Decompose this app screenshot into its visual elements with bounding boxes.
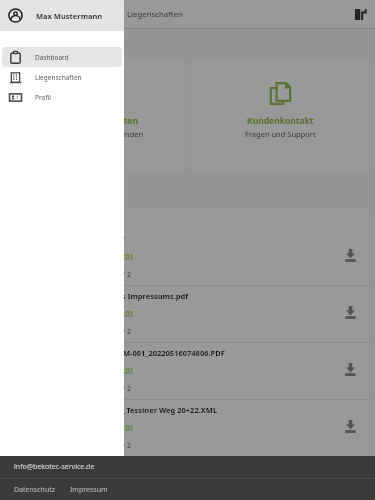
staticText: info@bekotec-service.de <box>14 462 95 472</box>
staticText: Objektstammdaten_Export_A_Tessiner Weg 2… <box>14 405 218 415</box>
staticText: Rechnung_Objektverwalt_RE-M-001_20220516… <box>14 348 225 358</box>
staticText: Dashboard <box>35 53 69 62</box>
button[interactable]: Max Mustermann <box>8 0 124 31</box>
button[interactable]: Rechnung_Objektverwalt_RE-M-001_20220516… <box>6 343 369 399</box>
staticText: Hochgeladen am 16.05.2022 07:48:01 <box>14 252 134 261</box>
button[interactable]: Logout <box>347 0 375 28</box>
button[interactable]: Profil <box>2 87 122 107</box>
button[interactable]: Objektstammdaten_Export_A_Tessiner Weg 2… <box>6 400 369 456</box>
staticText: Ihre Liegenschaften <box>53 115 138 127</box>
button[interactable]: Liegenschaften <box>2 67 122 87</box>
staticText: Dateigroesse 1.242 KB | Typ PDF 2 <box>14 441 132 451</box>
staticText: Alle Ihre Dokumente finden <box>46 129 144 139</box>
button[interactable]: Download <box>340 302 360 322</box>
staticText: Fragen und Support <box>245 129 316 139</box>
staticText: Liegenschaften <box>35 73 82 82</box>
staticText: Dateigroesse 1.242 KB | Typ PDF 2 <box>14 327 132 337</box>
button[interactable]: Dashboard <box>2 47 122 67</box>
button[interactable]: Kundenkontakt <box>191 58 369 172</box>
button[interactable]: Datenschutz <box>14 485 56 495</box>
staticText: Informationsblatt 2 Kopie des Impressums… <box>14 291 189 301</box>
button[interactable]: Informationsblatt 2 Kopie des Impressums… <box>6 286 369 342</box>
button[interactable]: Download <box>340 416 360 436</box>
button[interactable]: Ihre Liegenschaften <box>6 58 184 172</box>
staticText: Hochgeladen am 16.05.2022 07:48:01 <box>14 423 134 432</box>
staticText: Liegenschaften <box>127 9 183 20</box>
staticText: Kundenkontakt <box>247 115 314 127</box>
staticText: Hochgeladen am 16.05.2022 07:48:01 <box>14 366 134 375</box>
staticText: Max Mustermann <box>36 11 103 21</box>
staticText: Dateigroesse 1.242 KB | Typ PDF 2 <box>14 270 132 280</box>
staticText: Dateigroesse 1.242 KB | Typ PDF 2 <box>14 384 132 394</box>
button[interactable]: Impressum <box>70 485 108 495</box>
staticText: Widerrufsbelehrung_2022.pdf <box>14 234 125 244</box>
staticText: Hochgeladen am 16.05.2022 07:48:01 <box>14 309 134 318</box>
button[interactable]: Download <box>340 359 360 379</box>
button[interactable]: Download <box>340 245 360 265</box>
staticText: Profil <box>35 93 52 102</box>
button[interactable]: Widerrufsbelehrung_2022.pdf <box>6 229 369 285</box>
